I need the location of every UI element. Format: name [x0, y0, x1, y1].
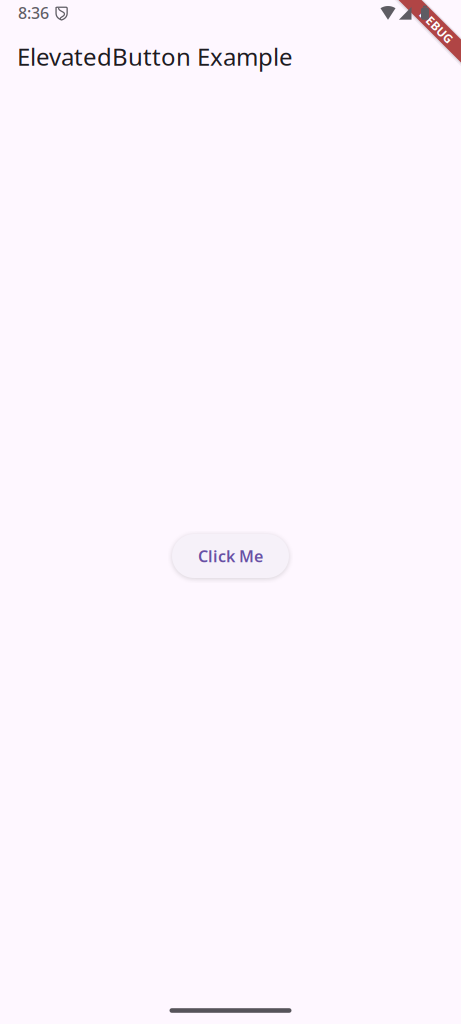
button[interactable]: Click Me: [172, 534, 289, 578]
staticText: Click Me: [198, 545, 263, 567]
staticText: DEBUG: [415, 18, 457, 34]
staticText: 8:36: [18, 2, 49, 23]
staticText: ElevatedButton Example: [17, 40, 293, 72]
